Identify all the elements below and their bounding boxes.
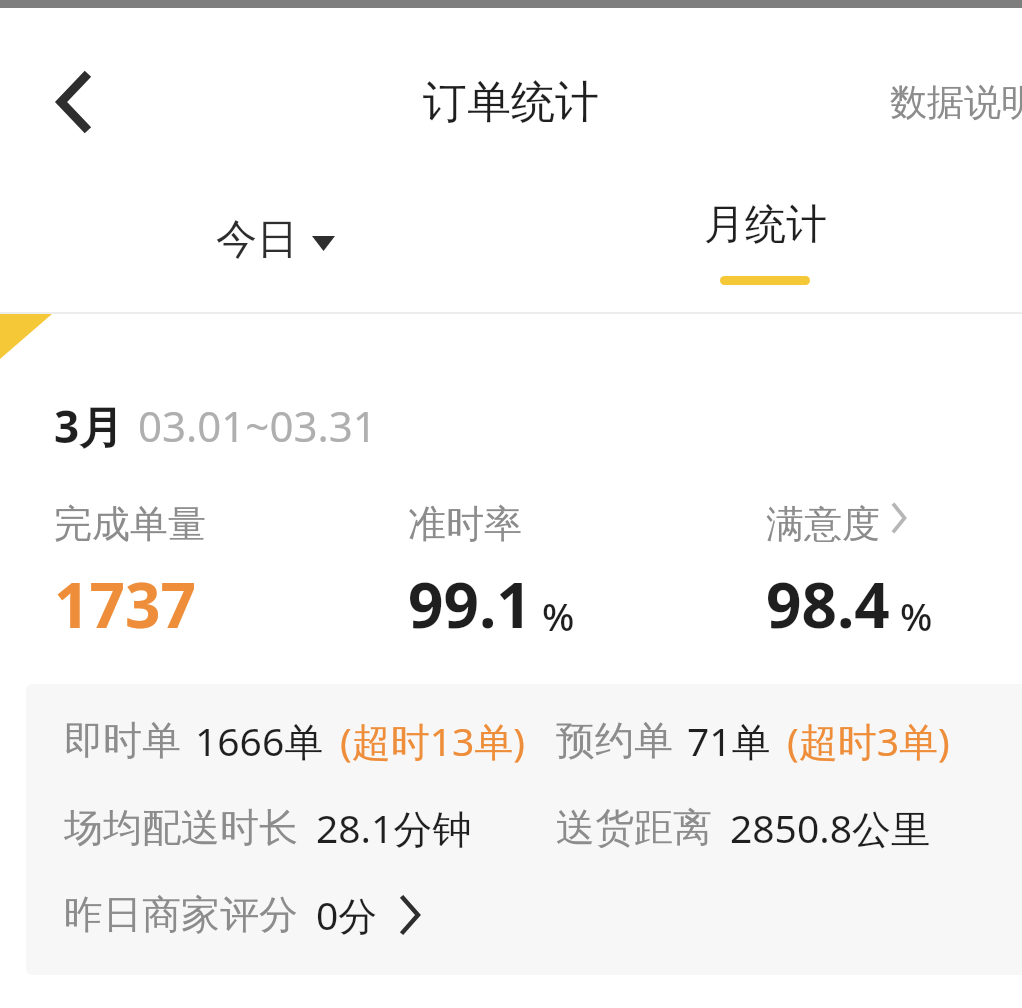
button[interactable]: 今日 (150, 184, 400, 312)
staticText: 预约单 (556, 716, 673, 765)
staticText: 订单统计 (423, 75, 599, 130)
staticText: 送货距离 (556, 803, 712, 852)
staticText: 即时单 (64, 716, 181, 765)
staticText: 0分 (316, 888, 378, 941)
staticText: % (900, 590, 933, 642)
button[interactable]: 月统计 (650, 184, 880, 312)
staticText: 数据说明 (890, 79, 1022, 126)
staticText: (超时3单) (787, 714, 950, 767)
staticText: 3月 (54, 396, 124, 456)
staticText: 99.1 (408, 562, 532, 646)
staticText: 28.1分钟 (316, 801, 472, 854)
staticText: 昨日商家评分 (64, 890, 298, 939)
staticText: (超时13单) (340, 714, 526, 767)
button[interactable]: Back (38, 66, 110, 138)
staticText: 准时率 (408, 500, 522, 548)
staticText: 完成单量 (54, 500, 206, 548)
staticText: 场均配送时长 (64, 803, 298, 852)
staticText: 1737 (54, 562, 196, 646)
staticText: 今日 (216, 214, 298, 266)
staticText: 98.4 (766, 562, 890, 646)
staticText: 03.01~03.31 (138, 397, 377, 454)
staticText: 满意度 (766, 500, 880, 548)
staticText: 月统计 (704, 199, 827, 251)
button[interactable]: 数据说明 (874, 79, 1022, 126)
staticText: 2850.8公里 (730, 801, 930, 854)
button[interactable]: 昨日商家评分 (64, 888, 420, 941)
staticText: 1666单 (195, 714, 324, 767)
staticText: 71单 (687, 714, 771, 767)
staticText: % (542, 590, 575, 642)
